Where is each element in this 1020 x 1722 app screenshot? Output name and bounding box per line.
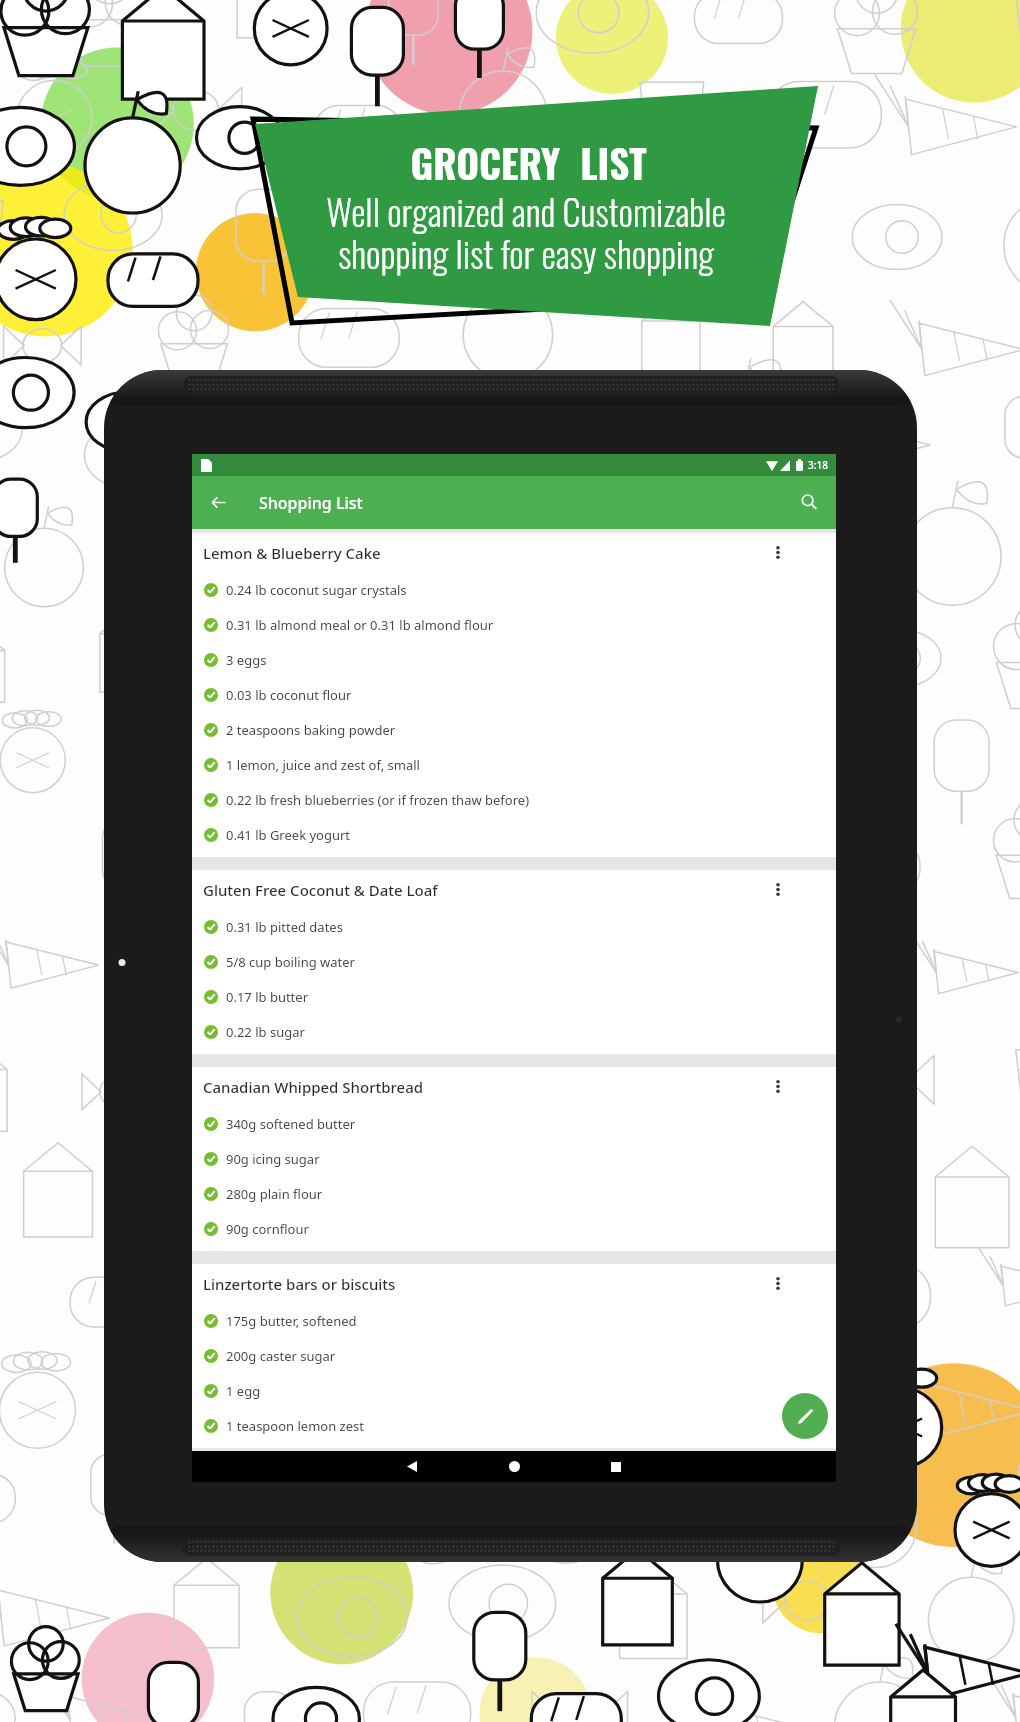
button[interactable]: 2 teaspoons baking powder	[192, 712, 836, 747]
button[interactable]: Lemon & Blueberry Cake	[192, 533, 836, 572]
staticText: 1 egg	[226, 1382, 261, 1400]
button[interactable]: More options	[760, 870, 796, 909]
button[interactable]: Navigate back	[192, 476, 244, 529]
staticText: 0.22 lb sugar	[226, 1023, 305, 1041]
staticText: 3 eggs	[226, 651, 267, 669]
staticText: 0.17 lb butter	[226, 988, 309, 1006]
button[interactable]: 0.22 lb sugar	[192, 1014, 836, 1049]
button[interactable]: 90g cornflour	[192, 1211, 836, 1246]
button[interactable]: 175g butter, softened	[192, 1303, 836, 1338]
button[interactable]: Edit list	[782, 1393, 828, 1439]
staticText: 90g cornflour	[226, 1220, 309, 1238]
button[interactable]: 90g icing sugar	[192, 1141, 836, 1176]
button[interactable]: More options	[760, 533, 796, 572]
staticText: 0.31 lb almond meal or 0.31 lb almond fl…	[226, 616, 494, 634]
staticText: Gluten Free Coconut & Date Loaf	[203, 880, 438, 900]
button[interactable]: More options	[760, 1264, 796, 1303]
button[interactable]: 200g caster sugar	[192, 1338, 836, 1373]
staticText: 0.24 lb coconut sugar crystals	[226, 581, 407, 599]
staticText: 0.22 lb fresh blueberries (or if frozen …	[226, 791, 530, 809]
staticText: 0.03 lb coconut flour	[226, 686, 352, 704]
staticText: Lemon & Blueberry Cake	[203, 543, 381, 563]
button[interactable]: Linzertorte bars or biscuits	[192, 1264, 836, 1303]
button[interactable]: 0.03 lb coconut flour	[192, 677, 836, 712]
button[interactable]: 340g softened butter	[192, 1106, 836, 1141]
button[interactable]: Search	[782, 476, 836, 529]
staticText: 280g plain flour	[226, 1185, 323, 1203]
button[interactable]: Canadian Whipped Shortbread	[192, 1067, 836, 1106]
button[interactable]: 3 eggs	[192, 642, 836, 677]
staticText: 5/8 cup boiling water	[226, 953, 355, 971]
staticText: 340g softened butter	[226, 1115, 356, 1133]
button[interactable]: Back	[361, 1451, 463, 1482]
button[interactable]: More options	[760, 1067, 796, 1106]
button[interactable]: 0.24 lb coconut sugar crystals	[192, 572, 836, 607]
staticText: GROCERY LIST	[410, 133, 647, 191]
button[interactable]: 1 teaspoon lemon zest	[192, 1408, 836, 1443]
staticText: Canadian Whipped Shortbread	[203, 1077, 424, 1097]
staticText: 3:18	[808, 458, 828, 472]
button[interactable]: 0.41 lb Greek yogurt	[192, 817, 836, 852]
button[interactable]: 1 egg	[192, 1373, 836, 1408]
button[interactable]: 0.17 lb butter	[192, 979, 836, 1014]
button[interactable]: Recent apps	[565, 1451, 667, 1482]
staticText: 175g butter, softened	[226, 1312, 357, 1330]
staticText: 0.41 lb Greek yogurt	[226, 826, 351, 844]
staticText: Shopping List	[259, 492, 363, 514]
button[interactable]: 280g plain flour	[192, 1176, 836, 1211]
staticText: 1 lemon, juice and zest of, small	[226, 756, 420, 774]
button[interactable]: 5/8 cup boiling water	[192, 944, 836, 979]
staticText: 0.31 lb pitted dates	[226, 918, 343, 936]
button[interactable]: Home	[463, 1451, 565, 1482]
button[interactable]: 0.22 lb fresh blueberries (or if frozen …	[192, 782, 836, 817]
staticText: 2 teaspoons baking powder	[226, 721, 396, 739]
staticText: 90g icing sugar	[226, 1150, 320, 1168]
button[interactable]: 0.31 lb almond meal or 0.31 lb almond fl…	[192, 607, 836, 642]
button[interactable]: Gluten Free Coconut & Date Loaf	[192, 870, 836, 909]
staticText: Well organized and Customizable shopping…	[326, 184, 726, 279]
button[interactable]: 0.31 lb pitted dates	[192, 909, 836, 944]
staticText: Linzertorte bars or biscuits	[203, 1274, 396, 1294]
staticText: 200g caster sugar	[226, 1347, 336, 1365]
staticText: 1 teaspoon lemon zest	[226, 1417, 364, 1435]
button[interactable]: 1 lemon, juice and zest of, small	[192, 747, 836, 782]
